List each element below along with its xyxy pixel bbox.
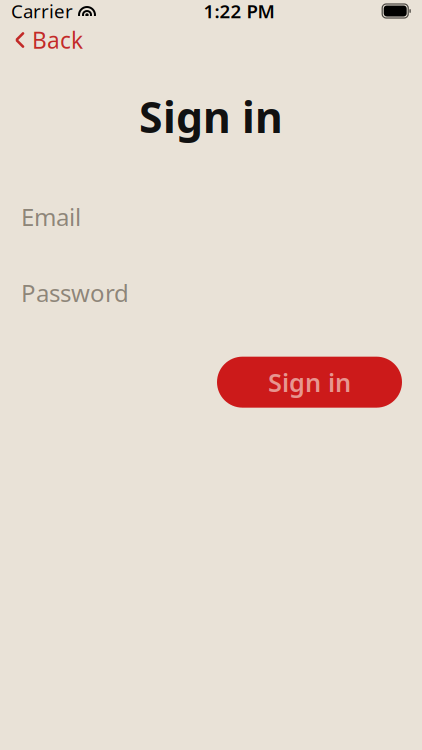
staticText: Password — [21, 277, 129, 309]
staticText: 1:22 PM — [204, 0, 275, 23]
staticText: Sign in — [268, 365, 351, 399]
staticText: Carrier — [11, 0, 73, 23]
button[interactable]: Sign in — [217, 357, 402, 408]
staticText: Sign in — [139, 88, 283, 145]
button[interactable]: Back — [0, 22, 97, 58]
staticText: Email — [21, 201, 81, 233]
staticText: Back — [32, 25, 83, 55]
